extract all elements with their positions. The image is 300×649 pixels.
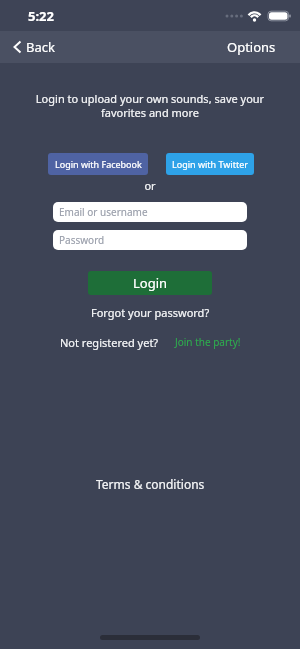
staticText: Login with Facebook	[55, 158, 142, 170]
staticText: Back	[26, 38, 55, 56]
staticText: Options	[227, 38, 276, 56]
button[interactable]: Login	[88, 271, 212, 295]
button[interactable]: Login with Twitter	[166, 153, 254, 175]
staticText: Not registered yet?	[60, 335, 159, 350]
button[interactable]: Terms & conditions	[96, 476, 205, 492]
button[interactable]: Email or username	[53, 202, 247, 222]
staticText: Email or username	[59, 205, 148, 219]
button[interactable]: Join the party!	[175, 335, 241, 349]
button[interactable]: Options	[227, 38, 300, 56]
staticText: Login to upload your own sounds, save yo…	[0, 91, 300, 120]
staticText: Terms & conditions	[96, 476, 205, 492]
button[interactable]: Password	[53, 230, 247, 250]
staticText: Login with Twitter	[172, 158, 248, 170]
staticText: or	[0, 178, 300, 193]
button[interactable]: Forgot your password?	[91, 305, 210, 320]
staticText: Password	[59, 233, 105, 247]
staticText: Forgot your password?	[91, 305, 210, 320]
button[interactable]: Login with Facebook	[48, 153, 148, 175]
staticText: Login	[133, 274, 168, 292]
staticText: Join the party!	[175, 335, 241, 349]
staticText: 5:22	[28, 7, 54, 25]
button[interactable]: Back	[0, 38, 55, 56]
